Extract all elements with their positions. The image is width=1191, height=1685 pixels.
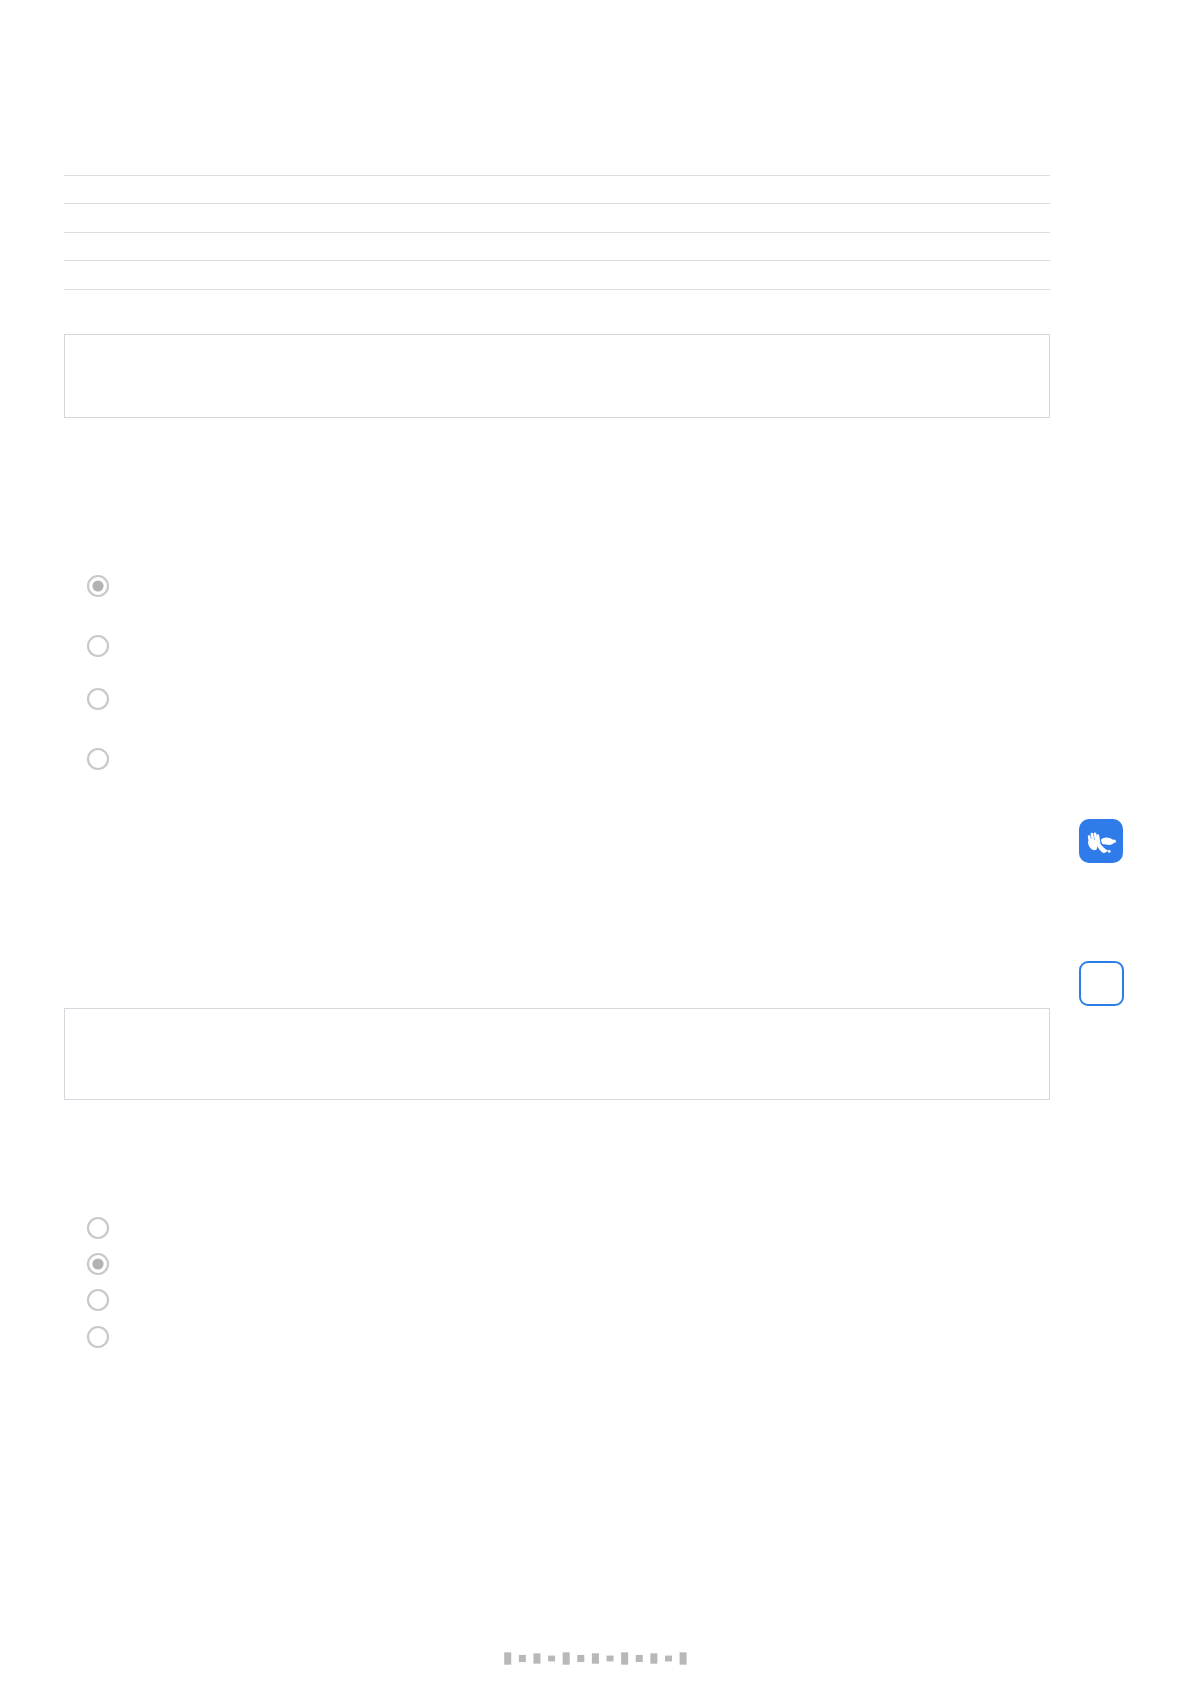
button[interactable]: Choice 4 xyxy=(84,1323,1044,1351)
button[interactable]: Option A xyxy=(84,572,1044,600)
button[interactable]: Sign language interpreter xyxy=(1079,819,1123,863)
button[interactable]: Option C xyxy=(84,685,1044,713)
button[interactable]: Option D xyxy=(84,745,1044,773)
button[interactable]: Text area two xyxy=(64,1008,1050,1100)
button[interactable]: Text area one xyxy=(64,334,1050,418)
button[interactable]: Choice 1 xyxy=(84,1214,1044,1242)
button[interactable]: Focused input xyxy=(1079,961,1124,1006)
button[interactable]: Option B xyxy=(84,632,1044,660)
button[interactable]: Choice 3 xyxy=(84,1286,1044,1314)
button[interactable]: Choice 2 xyxy=(84,1250,1044,1278)
